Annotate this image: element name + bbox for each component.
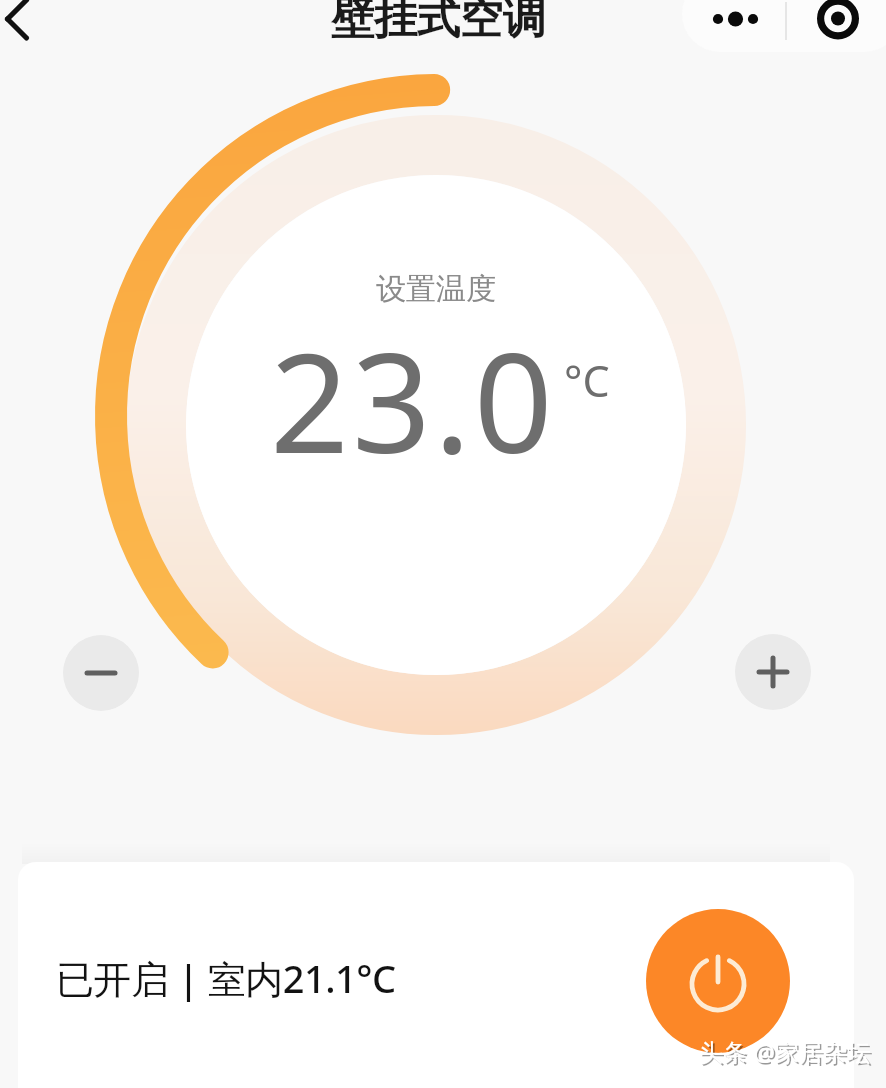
staticText: 头条 @家居杂坛 <box>701 1037 873 1070</box>
staticText: °C <box>564 351 610 410</box>
button[interactable]: Increase temperature <box>735 634 811 710</box>
staticText: 23.0 <box>270 305 556 493</box>
button[interactable]: 已开启 | 室内21.1°C <box>18 862 854 1088</box>
button[interactable]: More options <box>682 0 786 52</box>
button[interactable]: Back <box>0 0 58 55</box>
staticText: 设置温度 <box>376 270 496 308</box>
staticText: 壁挂式空调 <box>331 0 546 46</box>
button[interactable]: Decrease temperature <box>63 635 139 711</box>
staticText: 已开启 | 室内21.1°C <box>56 952 396 1004</box>
button[interactable]: Close mini program <box>786 0 886 52</box>
button[interactable]: Power <box>646 909 790 1053</box>
staticText: 头条 @家居杂坛 <box>699 1035 871 1068</box>
